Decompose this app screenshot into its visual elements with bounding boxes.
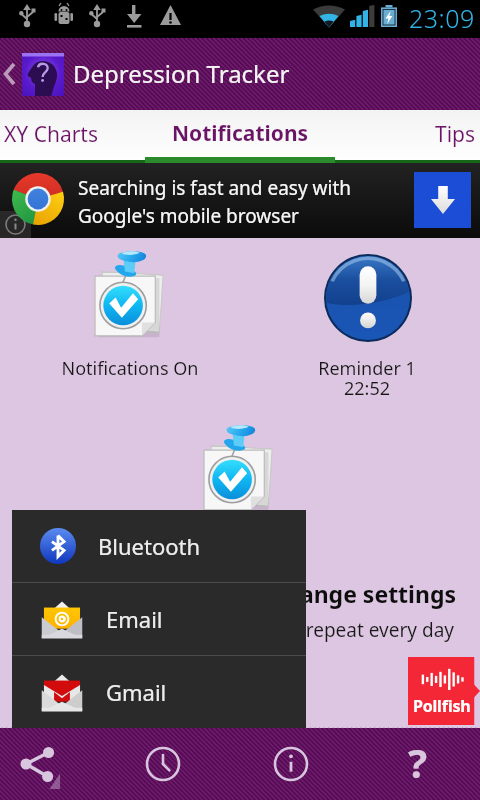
staticText: Notifications bbox=[172, 119, 309, 148]
staticText: Reminder 1 bbox=[277, 356, 457, 381]
staticText: 23:09 bbox=[409, 1, 475, 35]
staticText: Gmail bbox=[106, 677, 167, 707]
button[interactable]: XY Charts bbox=[0, 110, 145, 163]
button[interactable]: Searching is fast and easy with bbox=[0, 163, 480, 238]
staticText: Tips bbox=[435, 120, 476, 149]
button[interactable]: Notifications bbox=[145, 110, 335, 163]
button[interactable]: Gmail bbox=[12, 656, 306, 728]
staticText: Searching is fast and easy with bbox=[78, 175, 352, 201]
staticText: 22:52 bbox=[277, 376, 457, 401]
button[interactable]: Email bbox=[12, 583, 306, 655]
button[interactable]: Tips bbox=[335, 110, 480, 163]
button[interactable]: Install bbox=[414, 172, 471, 228]
staticText: Notifications On bbox=[40, 356, 220, 381]
staticText: Depression Tracker bbox=[73, 57, 290, 90]
staticText: Pollfish bbox=[413, 695, 471, 717]
button[interactable]: Pollfish survey bbox=[408, 657, 480, 725]
staticText: Google's mobile browser bbox=[78, 203, 299, 229]
button[interactable]: Help bbox=[380, 728, 456, 800]
staticText: Email bbox=[106, 604, 163, 634]
button[interactable]: Information bbox=[253, 728, 329, 800]
staticText: ? bbox=[408, 735, 428, 789]
button[interactable]: History bbox=[125, 728, 201, 800]
staticText: XY Charts bbox=[4, 120, 98, 149]
staticText: Tap to change settings bbox=[196, 578, 456, 609]
button[interactable]: Navigate up bbox=[0, 38, 70, 110]
button[interactable]: Share bbox=[0, 728, 76, 800]
button[interactable]: Bluetooth bbox=[12, 510, 306, 582]
staticText: Will repeat every day bbox=[268, 617, 454, 643]
staticText: Bluetooth bbox=[98, 531, 201, 561]
